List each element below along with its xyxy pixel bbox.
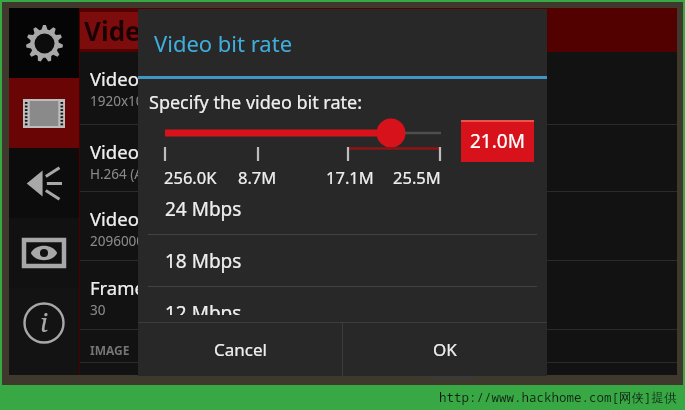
- button[interactable]: Cancel: [138, 323, 342, 376]
- button[interactable]: Preview: [9, 218, 79, 288]
- staticText: i: [40, 304, 48, 339]
- staticText: 25.5M: [393, 166, 441, 188]
- staticText: Specify the video bit rate:: [149, 90, 363, 115]
- staticText: 30: [90, 301, 106, 319]
- staticText: Video codec: [90, 139, 195, 164]
- staticText: 1920x1080: [90, 92, 159, 110]
- button[interactable]: Info: [9, 288, 79, 358]
- staticText: 18 Mbps: [165, 248, 242, 274]
- button[interactable]: 12 Mbps: [138, 287, 547, 315]
- staticText: IMAGE: [90, 342, 130, 358]
- staticText: Video: [84, 13, 157, 48]
- staticText: 17.1M: [326, 166, 374, 188]
- staticText: Video bit rate: [90, 206, 207, 231]
- staticText: Video resolution: [90, 66, 232, 91]
- button[interactable]: Video bit rate: [80, 192, 677, 261]
- button[interactable]: 21.0M: [461, 120, 534, 162]
- staticText: 24 Mbps: [165, 196, 242, 222]
- staticText: H.264 (AVC): [90, 165, 163, 183]
- button[interactable]: Audio: [9, 148, 79, 218]
- button[interactable]: OK: [343, 323, 547, 376]
- staticText: Video bit rate: [154, 28, 293, 58]
- staticText: Cancel: [214, 338, 267, 361]
- staticText: 256.0K: [164, 166, 217, 188]
- button[interactable]: Video codec: [80, 125, 677, 192]
- staticText: OK: [433, 338, 457, 361]
- button[interactable]: 18 Mbps: [138, 235, 547, 287]
- staticText: 21.0M: [470, 128, 525, 154]
- staticText: 12 Mbps: [165, 300, 242, 315]
- staticText: http://www.hackhome.com[网侠]提供: [439, 389, 677, 406]
- button[interactable]: Video: [9, 78, 79, 148]
- staticText: 20960000: [90, 232, 152, 250]
- button[interactable]: Video resolution: [80, 52, 677, 125]
- button[interactable]: Settings: [9, 8, 79, 78]
- staticText: 8.7M: [238, 166, 277, 188]
- staticText: Frame rate: [90, 275, 185, 300]
- button[interactable]: Frame rate: [80, 261, 677, 330]
- button[interactable]: 24 Mbps: [138, 183, 547, 235]
